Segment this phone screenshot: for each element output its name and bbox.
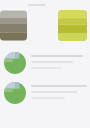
button[interactable]: Photo, dry field <box>0 10 27 40</box>
button[interactable] <box>0 52 90 74</box>
button[interactable] <box>0 82 90 104</box>
button[interactable]: Photo, yellow flowers <box>58 10 87 41</box>
